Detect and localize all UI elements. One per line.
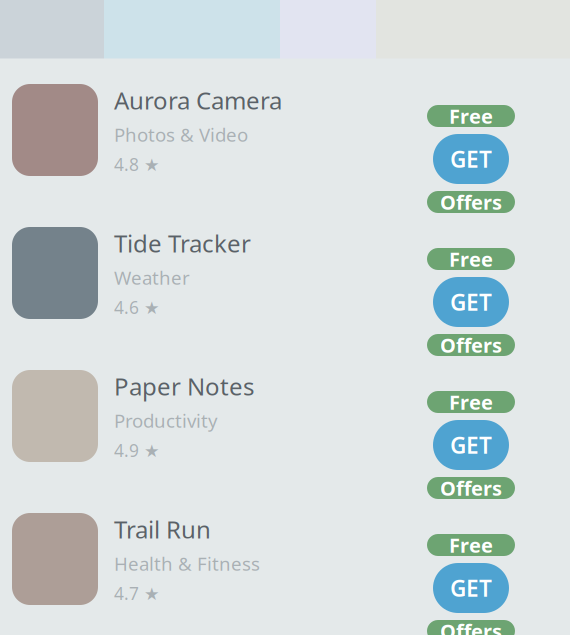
- staticText: Health & Fitness: [114, 551, 260, 576]
- staticText: Offers: [440, 475, 502, 501]
- staticText: GET: [450, 430, 492, 460]
- staticText: Productivity: [114, 408, 218, 433]
- button[interactable]: GET: [433, 563, 509, 613]
- staticText: Free: [449, 389, 493, 415]
- staticText: Free: [449, 532, 493, 558]
- staticText: Weather: [114, 265, 190, 290]
- staticText: 4.7 ★: [114, 582, 160, 605]
- staticText: Photos & Video: [114, 122, 248, 147]
- staticText: GET: [450, 144, 492, 174]
- staticText: Offers: [440, 332, 502, 358]
- staticText: Aurora Camera: [114, 84, 282, 116]
- staticText: Tide Tracker: [114, 227, 251, 259]
- staticText: Free: [449, 246, 493, 272]
- staticText: Offers: [440, 189, 502, 215]
- staticText: 4.8 ★: [114, 153, 160, 176]
- staticText: 4.6 ★: [114, 296, 160, 319]
- staticText: GET: [450, 287, 492, 317]
- staticText: 4.9 ★: [114, 439, 160, 462]
- button[interactable]: GET: [433, 134, 509, 184]
- staticText: Paper Notes: [114, 370, 254, 402]
- staticText: Trail Run: [114, 513, 211, 545]
- button[interactable]: GET: [433, 420, 509, 470]
- button[interactable]: GET: [433, 277, 509, 327]
- staticText: Offers: [440, 618, 502, 635]
- staticText: GET: [450, 573, 492, 603]
- staticText: Free: [449, 103, 493, 129]
